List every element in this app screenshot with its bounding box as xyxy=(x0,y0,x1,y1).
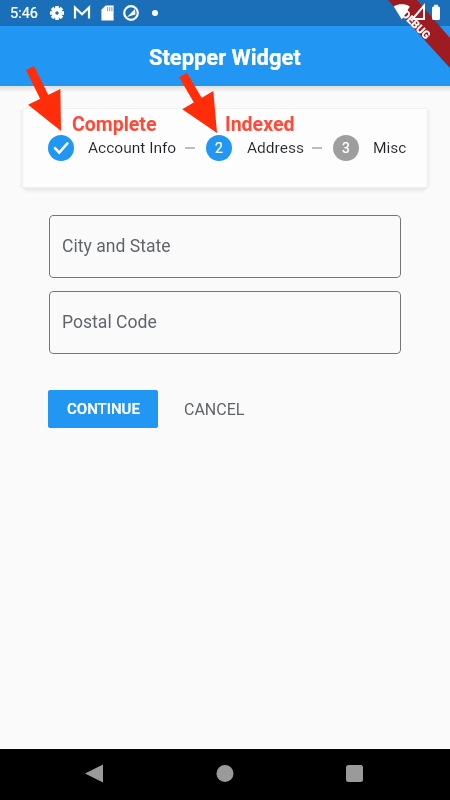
staticText: DEBUG xyxy=(399,8,433,43)
button[interactable]: Home xyxy=(205,749,245,800)
button[interactable]: Recent apps xyxy=(335,749,375,800)
button[interactable]: Postal Code xyxy=(49,291,401,354)
staticText: CANCEL xyxy=(184,400,245,419)
staticText: Postal Code xyxy=(62,312,157,333)
button[interactable]: CONTINUE xyxy=(48,390,158,428)
button[interactable]: Step complete xyxy=(48,135,74,161)
button[interactable]: City and State xyxy=(49,215,401,278)
staticText: Indexed xyxy=(225,113,295,136)
staticText: Stepper Widget xyxy=(149,45,301,71)
staticText: 3 xyxy=(342,140,350,156)
button[interactable]: Step 2 xyxy=(206,135,232,161)
button[interactable]: CANCEL xyxy=(170,390,258,428)
staticText: Misc xyxy=(373,139,407,157)
staticText: Account Info xyxy=(88,139,177,157)
staticText: 2 xyxy=(215,140,223,156)
staticText: Address xyxy=(247,139,304,157)
button[interactable]: Step 3 xyxy=(333,135,359,161)
staticText: City and State xyxy=(62,236,171,257)
staticText: CONTINUE xyxy=(67,400,140,418)
staticText: Complete xyxy=(72,113,157,136)
staticText: 5:46 xyxy=(10,5,38,22)
button[interactable]: Back xyxy=(74,749,114,800)
